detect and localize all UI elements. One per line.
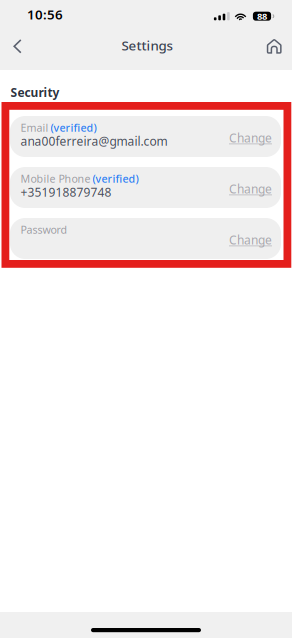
staticText: Change: [229, 232, 272, 248]
staticText: 10:56: [27, 5, 63, 23]
staticText: (verified): [50, 121, 96, 135]
staticText: Change: [229, 130, 272, 146]
staticText: 88: [257, 10, 267, 22]
staticText: Settings: [121, 36, 172, 54]
button[interactable]: Password: [10, 218, 281, 259]
button[interactable]: Home: [257, 29, 291, 63]
staticText: Change: [229, 181, 272, 197]
button[interactable]: Email: [10, 116, 281, 157]
staticText: Email: [20, 121, 48, 135]
staticText: Mobile Phone: [20, 172, 90, 186]
staticText: Security: [10, 84, 59, 100]
staticText: ana00ferreira@gmail.com: [20, 133, 167, 149]
button[interactable]: Mobile Phone: [10, 167, 281, 208]
staticText: (verified): [92, 172, 138, 186]
staticText: +351918879748: [20, 184, 111, 200]
button[interactable]: Back: [0, 29, 34, 63]
staticText: Password: [20, 223, 67, 237]
